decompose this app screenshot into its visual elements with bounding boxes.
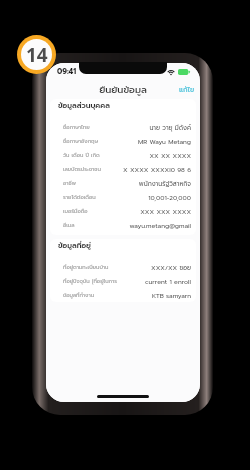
staticText: XX XX XXXX	[123, 151, 191, 161]
button[interactable]: อาชีพ	[50, 176, 196, 190]
button[interactable]: เบอร์มือถือ	[50, 204, 196, 218]
button[interactable]: วัน เดือน ปี เกิด	[50, 148, 196, 162]
staticText: ที่อยู่ปัจจุบัน (ที่อยู่ในการจัดส่งเอกสา…	[63, 277, 123, 288]
staticText: 09:41	[57, 66, 77, 77]
button[interactable]: เลขบัตรประชาชน	[50, 162, 196, 176]
staticText: XXX XXX XXXX	[123, 207, 191, 217]
staticText: ยืนยันข้อมูล	[46, 83, 200, 97]
staticText: ข้อมูลที่อยู่	[58, 240, 91, 251]
staticText: current 1 enroll อำเภอ ตำบล สมุทรปราการ,…	[123, 277, 191, 288]
button[interactable]: ที่อยู่ตามทะเบียนบ้าน	[50, 260, 196, 274]
staticText: อาชีพ	[63, 179, 123, 187]
staticText: X XXXX XXXXI0 98 6	[123, 165, 191, 175]
staticText: ข้อมูลส่วนบุคคล	[58, 100, 110, 111]
staticText: ที่อยู่ตามทะเบียนบ้าน	[63, 263, 123, 271]
button[interactable]: ชื่อภาษาไทย	[50, 120, 196, 134]
staticText: แก้ไข	[179, 84, 195, 95]
staticText: เบอร์มือถือ	[63, 207, 123, 215]
staticText: 10,001-20,000	[123, 193, 191, 203]
button[interactable]: ข้อมูลที่ทำงาน	[50, 288, 196, 302]
staticText: ชื่อภาษาไทย	[63, 123, 123, 131]
button[interactable]: อีเมล	[50, 218, 196, 232]
staticText: ข้อมูลที่ทำงาน	[63, 291, 123, 299]
button[interactable]: แก้ไข	[171, 81, 200, 98]
staticText: ชื่อภาษาอังกฤษ	[63, 137, 123, 145]
staticText: รายได้ต่อเดือน	[63, 193, 123, 201]
staticText: KTB samyarn	[123, 291, 191, 301]
staticText: วัน เดือน ปี เกิด	[63, 151, 123, 159]
button[interactable]: ที่อยู่ปัจจุบัน (ที่อยู่ในการจัดส่งเอกสา…	[50, 274, 196, 288]
staticText: MR Wayu Metang	[123, 137, 191, 147]
button[interactable]: ชื่อภาษาอังกฤษ	[50, 134, 196, 148]
staticText: นาย วายุ มีดังค์	[123, 123, 191, 133]
staticText: อีเมล	[63, 221, 123, 229]
staticText: เลขบัตรประชาชน	[63, 165, 123, 173]
staticText: พนักงานรัฐวิสาหกิจ	[123, 179, 191, 189]
staticText: XXX/XX ซอย XXX/X เขต แขวง กรุงเทพมหานคร.…	[123, 263, 191, 274]
staticText: wayu.metang@gmail .com	[123, 221, 191, 232]
staticText: 14	[26, 42, 48, 68]
button[interactable]: รายได้ต่อเดือน	[50, 190, 196, 204]
